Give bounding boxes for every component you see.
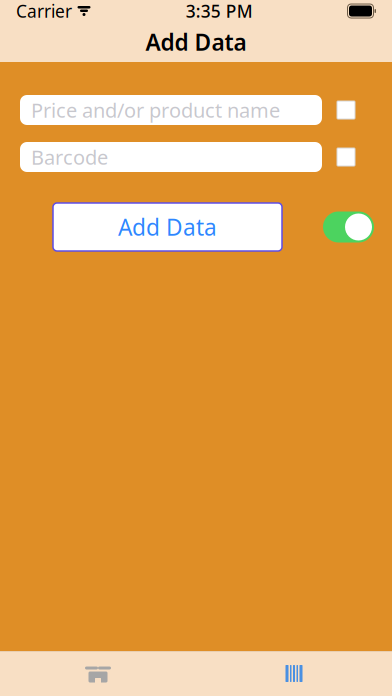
staticText: Price and/or product name <box>31 97 280 123</box>
button[interactable]: Price and/or product name <box>20 95 322 125</box>
button[interactable]: Toggle Barcode <box>337 148 355 166</box>
button[interactable]: Add Data <box>53 203 282 251</box>
button[interactable]: Home <box>0 651 196 696</box>
button[interactable]: Barcode <box>20 142 322 172</box>
button[interactable]: Toggle Price and/or product name <box>337 101 355 119</box>
staticText: Carrier <box>16 0 72 22</box>
staticText: Add Data <box>145 27 246 57</box>
staticText: Add Data <box>118 212 217 242</box>
button[interactable]: Barcode scanner <box>196 651 392 696</box>
staticText: 3:35 PM <box>186 0 253 22</box>
staticText: Barcode <box>31 144 108 170</box>
button[interactable]: Scanner enabled <box>323 211 374 242</box>
